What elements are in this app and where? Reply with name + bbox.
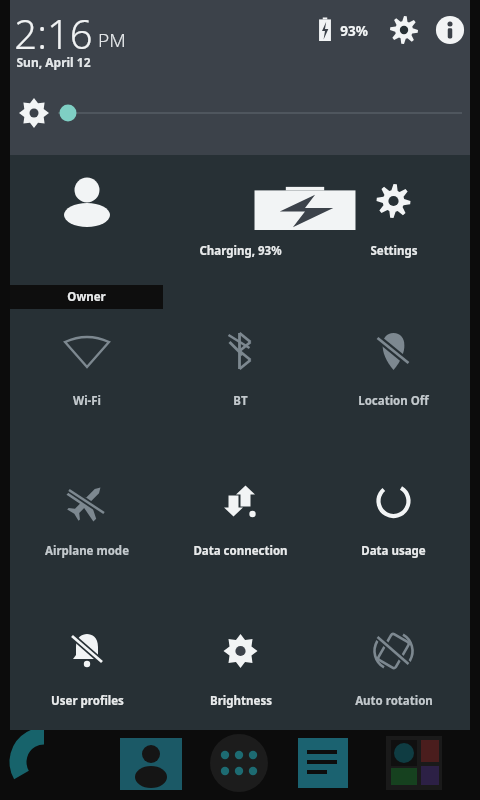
button[interactable]: About [434,14,466,46]
button[interactable]: Settings [388,14,420,46]
staticText: Airplane mode [45,543,129,559]
button[interactable]: Airplane mode [10,455,164,605]
button[interactable]: Charging, 93% [164,155,317,305]
button[interactable]: User profiles [10,605,164,730]
button[interactable]: Owner profile [10,155,164,305]
button[interactable]: Auto rotation [317,605,470,730]
staticText: Location Off [358,393,429,409]
staticText: BT [233,393,248,409]
button[interactable]: Data connection [164,455,317,605]
staticText: Brightness [210,693,272,709]
button[interactable]: Brightness [164,605,317,730]
staticText: Charging, 93% [199,243,282,259]
button[interactable]: Location Off [317,305,470,455]
button[interactable]: BT [164,305,317,455]
staticText: Sun, April 12 [16,54,91,70]
staticText: Settings [370,243,418,259]
button[interactable]: Data usage [317,455,470,605]
button[interactable]: Wi-Fi [10,305,164,455]
staticText: 93% [340,22,368,40]
button[interactable]: Settings [317,155,470,305]
staticText: PM [98,27,126,53]
button[interactable]: Brightness slider [10,88,470,138]
staticText: User profiles [51,693,124,709]
staticText: Wi-Fi [73,393,101,409]
button[interactable]: Owner [10,285,163,309]
staticText: 2:16 [14,6,93,60]
staticText: Owner [67,289,106,305]
staticText: Data connection [193,543,288,559]
staticText: Data usage [361,543,426,559]
staticText: Auto rotation [355,693,433,709]
